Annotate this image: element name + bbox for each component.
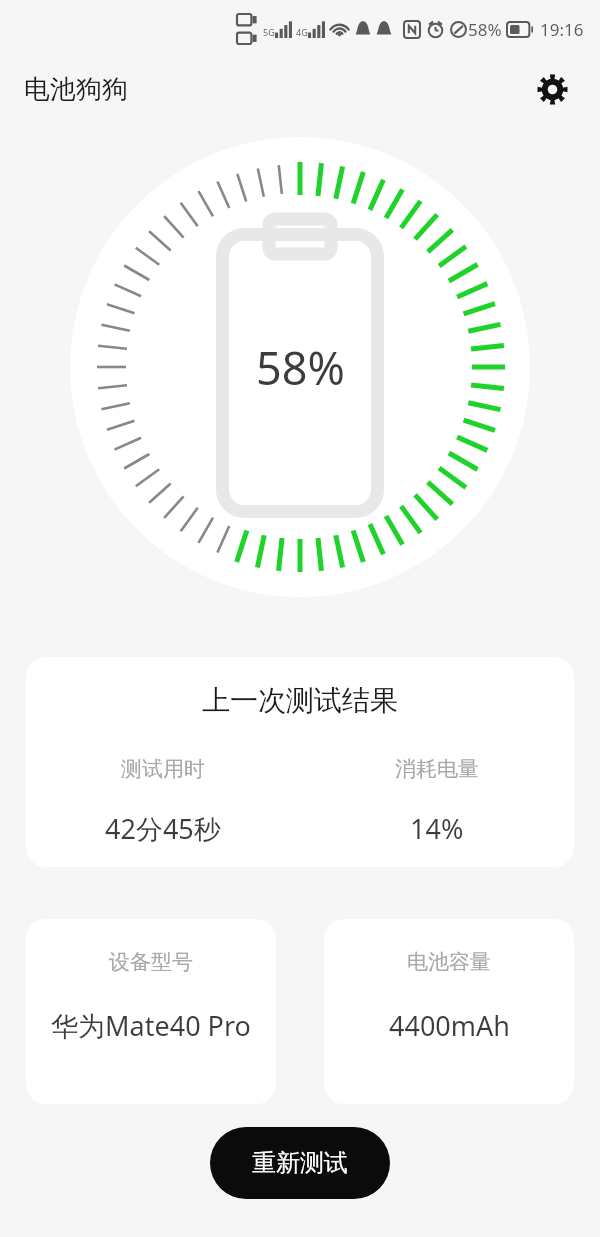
staticText: 电池狗狗 xyxy=(24,73,128,106)
staticText: 华为Mate40 Pro xyxy=(51,1007,251,1044)
staticText: 消耗电量 xyxy=(395,756,479,782)
staticText: 58% xyxy=(468,18,502,41)
staticText: 58% xyxy=(256,337,345,398)
staticText: 19:16 xyxy=(540,18,584,41)
staticText: 42分45秒 xyxy=(105,810,221,847)
button[interactable]: 重新测试 xyxy=(210,1127,390,1199)
staticText: 上一次测试结果 xyxy=(26,683,574,718)
button[interactable]: Settings xyxy=(532,69,572,109)
staticText: 重新测试 xyxy=(252,1148,348,1178)
button[interactable]: 设备型号 xyxy=(26,919,276,1104)
staticText: 设备型号 xyxy=(109,949,193,975)
staticText: 测试用时 xyxy=(121,756,205,782)
staticText: 5G xyxy=(263,26,275,38)
staticText: 4G xyxy=(296,26,308,38)
staticText: 4400mAh xyxy=(389,1007,510,1044)
button[interactable]: 上一次测试结果 xyxy=(26,657,574,867)
staticText: 14% xyxy=(410,810,464,847)
button[interactable]: 电池容量 xyxy=(324,919,574,1104)
staticText: 电池容量 xyxy=(407,949,491,975)
